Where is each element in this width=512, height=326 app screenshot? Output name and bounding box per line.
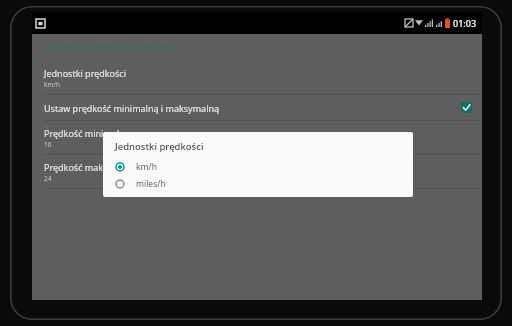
button[interactable]: Jednostki prędkości: [32, 61, 482, 94]
staticText: km/h: [136, 161, 157, 173]
staticText: Jednostki prędkości: [44, 67, 126, 79]
staticText: km/h: [44, 80, 60, 89]
button[interactable]: Ustaw prędkość minimalną i maksymalną: [461, 102, 472, 113]
button[interactable]: Ustaw prędkość minimalną i maksymalną: [32, 95, 482, 120]
staticText: Prędkość maksymalna: [44, 161, 139, 173]
button[interactable]: km/h: [103, 158, 413, 175]
staticText: 24: [44, 174, 52, 183]
staticText: Jednostki prędkości: [115, 140, 204, 153]
staticText: Ustaw prędkość minimalną i maksymalną: [44, 102, 461, 114]
staticText: miles/h: [136, 178, 166, 190]
staticText: 01:03: [453, 17, 477, 29]
staticText: USTAWIENIA PRĘDKOŚCIOMIERZA: [44, 42, 176, 52]
button[interactable]: miles/h: [103, 175, 413, 192]
button[interactable]: Prędkość maksymalna: [32, 155, 482, 188]
staticText: 16: [44, 140, 52, 149]
staticText: Prędkość minimalna: [44, 127, 130, 139]
button[interactable]: Prędkość minimalna: [32, 121, 482, 154]
